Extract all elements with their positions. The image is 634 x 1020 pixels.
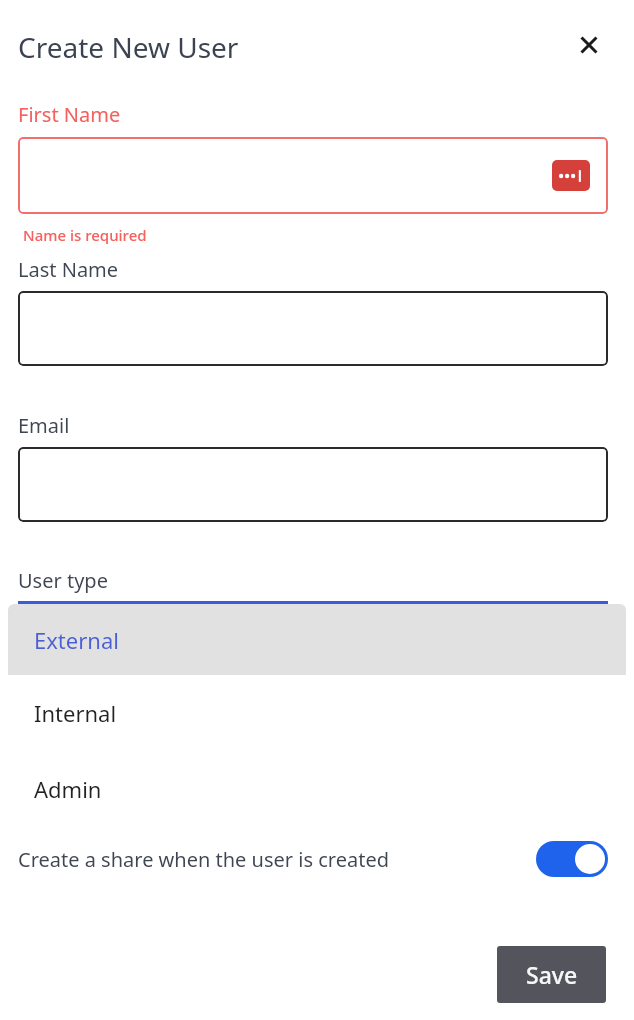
button[interactable] xyxy=(18,447,608,522)
button[interactable]: Close xyxy=(566,22,612,68)
button[interactable]: Name options xyxy=(552,160,590,191)
button[interactable]: Create a share toggle xyxy=(536,841,608,877)
staticText: User type xyxy=(18,567,108,594)
staticText: Admin xyxy=(34,774,102,804)
staticText: Name is required xyxy=(23,225,147,245)
button[interactable]: Name options xyxy=(18,137,608,214)
button[interactable]: Admin xyxy=(8,751,626,826)
staticText: Create a share when the user is created xyxy=(18,846,389,873)
button[interactable]: External xyxy=(8,604,626,675)
button[interactable] xyxy=(18,291,608,366)
button[interactable]: Internal xyxy=(8,675,626,751)
staticText: Create New User xyxy=(18,28,239,66)
staticText: External xyxy=(34,625,119,655)
button[interactable]: Save xyxy=(497,946,606,1003)
staticText: Internal xyxy=(34,698,117,728)
staticText: Last Name xyxy=(18,256,119,283)
staticText: First Name xyxy=(18,101,121,128)
staticText: Email xyxy=(18,412,70,439)
staticText: Save xyxy=(526,959,578,990)
